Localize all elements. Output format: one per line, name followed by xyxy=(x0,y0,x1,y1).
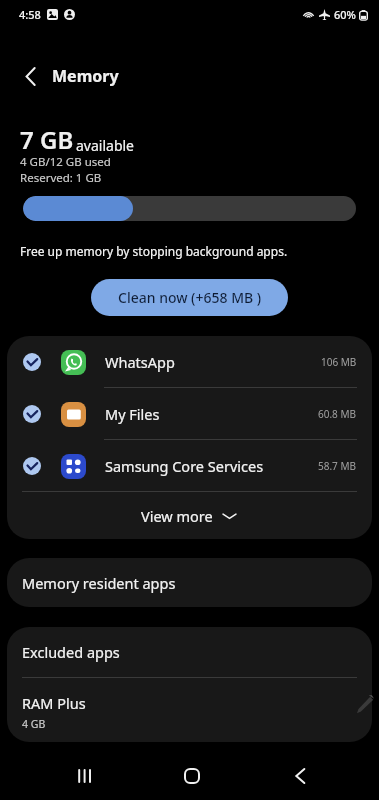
staticText: available xyxy=(76,136,135,155)
button[interactable]: Back xyxy=(274,752,326,800)
staticText: View more xyxy=(141,506,213,526)
button[interactable]: Home xyxy=(166,752,218,800)
staticText: 4 GB xyxy=(22,717,46,731)
staticText: WhatsApp xyxy=(105,352,321,372)
staticText: Clean now (+658 MB ) xyxy=(118,288,262,307)
staticText: 7 GB xyxy=(20,123,74,156)
staticText: RAM Plus xyxy=(22,693,86,713)
staticText: 60% xyxy=(334,7,356,22)
button[interactable]: Back xyxy=(14,60,46,92)
staticText: Memory xyxy=(52,65,119,87)
staticText: Memory resident apps xyxy=(22,573,176,593)
staticText: Reserved: 1 GB xyxy=(20,170,102,186)
staticText: Free up memory by stopping background ap… xyxy=(20,243,288,259)
button[interactable]: Clean now (+658 MB ) xyxy=(91,279,288,316)
staticText: Excluded apps xyxy=(22,642,120,662)
staticText: 4 GB/12 GB used xyxy=(20,154,111,170)
staticText: 106 MB xyxy=(321,355,357,369)
staticText: Samsung Core Services xyxy=(105,456,318,476)
button[interactable]: Recent apps xyxy=(58,752,110,800)
button[interactable]: Memory resident apps xyxy=(7,558,372,607)
staticText: My Files xyxy=(105,404,318,424)
button[interactable]: RAM Plus xyxy=(7,678,372,742)
button[interactable]: Samsung Core Services xyxy=(7,440,372,492)
button[interactable]: WhatsApp xyxy=(7,336,372,388)
staticText: 4:58 xyxy=(19,7,41,22)
button[interactable]: View more xyxy=(7,492,372,539)
staticText: 60.8 MB xyxy=(318,407,357,421)
button[interactable]: My Files xyxy=(7,388,372,440)
staticText: 58.7 MB xyxy=(318,459,357,473)
button[interactable]: Excluded apps xyxy=(7,627,372,677)
